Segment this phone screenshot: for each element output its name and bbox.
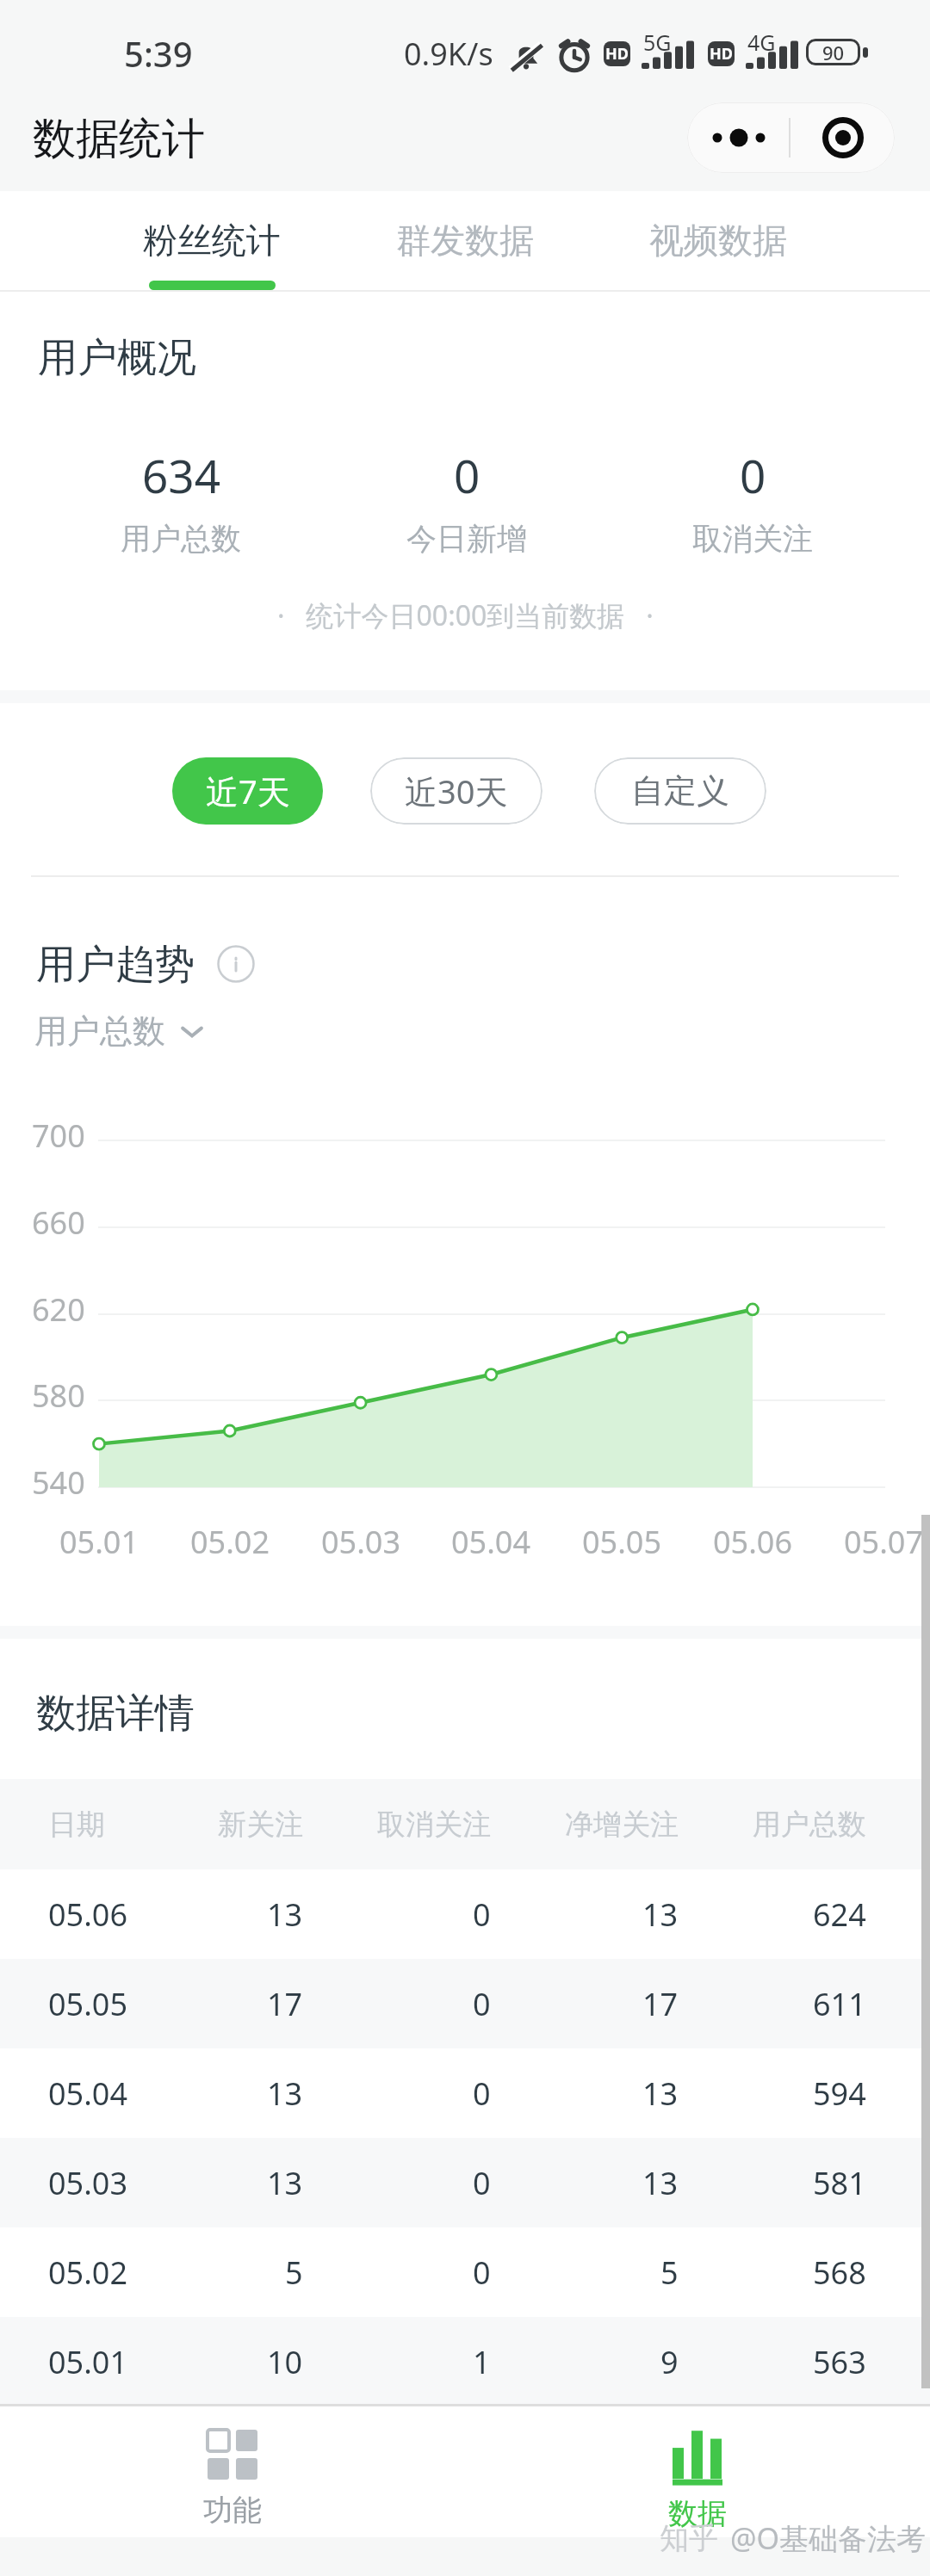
staticText: 634 [142, 444, 220, 506]
staticText: 用户总数 [753, 1807, 866, 1843]
staticText: 620 [32, 1288, 85, 1331]
staticText: 5 [285, 2252, 303, 2294]
staticText: 611 [813, 1983, 866, 2025]
staticText: 624 [813, 1893, 866, 1936]
staticText: 594 [813, 2073, 866, 2115]
staticText: 今日新增 [406, 520, 527, 558]
staticText: 用户概况 [38, 333, 196, 383]
button[interactable]: 近7天 [172, 757, 323, 825]
staticText: 05.04 [48, 2073, 128, 2115]
staticText: 660 [32, 1202, 85, 1244]
staticText: 数据详情 [36, 1689, 195, 1739]
staticText: 700 [32, 1115, 85, 1157]
staticText: 05.02 [48, 2252, 128, 2294]
button[interactable]: 视频数据 [592, 191, 845, 293]
staticText: 580 [32, 1374, 85, 1417]
staticText: 取消关注 [377, 1807, 491, 1843]
staticText: 5 [660, 2252, 679, 2294]
staticText: 9 [660, 2341, 679, 2383]
staticText: 日期 [48, 1807, 105, 1843]
staticText: 05.06 [48, 1893, 128, 1936]
staticText: 13 [267, 2162, 303, 2204]
button[interactable]: 近30天 [370, 757, 542, 825]
staticText: 取消关注 [692, 520, 813, 558]
staticText: 568 [813, 2252, 866, 2294]
staticText: 0 [454, 444, 480, 506]
staticText: 05.01 [48, 2341, 128, 2383]
staticText: 4G [747, 28, 776, 57]
staticText: 用户总数 [34, 1010, 165, 1052]
staticText: 540 [32, 1461, 85, 1504]
staticText: 13 [642, 2162, 679, 2204]
staticText: 0 [473, 2162, 491, 2204]
staticText: 近30天 [405, 769, 508, 813]
staticText: 13 [642, 1893, 679, 1936]
staticText: 13 [642, 2073, 679, 2115]
staticText: 群发数据 [396, 219, 534, 262]
staticText: @O基础备法考 [730, 2518, 927, 2558]
button[interactable]: 自定义 [594, 757, 766, 825]
staticText: 0 [740, 444, 766, 506]
staticText: 563 [813, 2341, 866, 2383]
staticText: HD [710, 43, 733, 65]
staticText: 0 [473, 1893, 491, 1936]
staticText: 近7天 [206, 769, 290, 813]
button[interactable]: 数据 [465, 2406, 930, 2537]
staticText: 5G [643, 28, 672, 57]
staticText: 0 [473, 1983, 491, 2025]
staticText: 05.07 [844, 1521, 924, 1563]
staticText: 数据统计 [33, 112, 205, 166]
staticText: 05.05 [582, 1521, 662, 1563]
button[interactable]: More options [687, 102, 790, 173]
staticText: 视频数据 [649, 219, 787, 262]
staticText: 05.03 [48, 2162, 128, 2204]
staticText: 数据 [668, 2495, 727, 2532]
button[interactable]: 用户总数 [34, 1010, 207, 1052]
staticText: 5:39 [124, 30, 193, 77]
staticText: 05.02 [190, 1521, 270, 1563]
staticText: 0.9K/s [404, 33, 493, 75]
staticText: HD [605, 43, 629, 65]
staticText: 05.01 [59, 1521, 139, 1563]
staticText: 0 [473, 2252, 491, 2294]
staticText: 10 [267, 2341, 303, 2383]
staticText: 17 [642, 1983, 679, 2025]
staticText: 净增关注 [565, 1807, 679, 1843]
staticText: 用户趋势 [36, 940, 195, 990]
button[interactable]: 群发数据 [338, 191, 592, 293]
staticText: · 统计今日00:00到当前数据 · [277, 596, 654, 634]
staticText: 新关注 [218, 1807, 303, 1843]
button[interactable]: 粉丝统计 [85, 191, 338, 293]
staticText: 粉丝统计 [143, 219, 281, 262]
staticText: 功能 [203, 2492, 262, 2529]
staticText: 0 [473, 2073, 491, 2115]
staticText: 13 [267, 2073, 303, 2115]
staticText: 自定义 [631, 770, 729, 812]
staticText: 17 [267, 1983, 303, 2025]
staticText: 05.03 [321, 1521, 401, 1563]
staticText: 用户总数 [121, 520, 241, 558]
staticText: 90 [822, 40, 845, 65]
button[interactable]: 功能 [0, 2406, 465, 2537]
staticText: 05.04 [451, 1521, 531, 1563]
button[interactable]: Info [217, 945, 255, 983]
staticText: 1 [473, 2341, 491, 2383]
button[interactable]: Close [791, 102, 895, 173]
staticText: 知乎 [660, 2520, 718, 2557]
staticText: 05.06 [713, 1521, 793, 1563]
staticText: 13 [267, 1893, 303, 1936]
staticText: 581 [813, 2162, 866, 2204]
staticText: 05.05 [48, 1983, 128, 2025]
